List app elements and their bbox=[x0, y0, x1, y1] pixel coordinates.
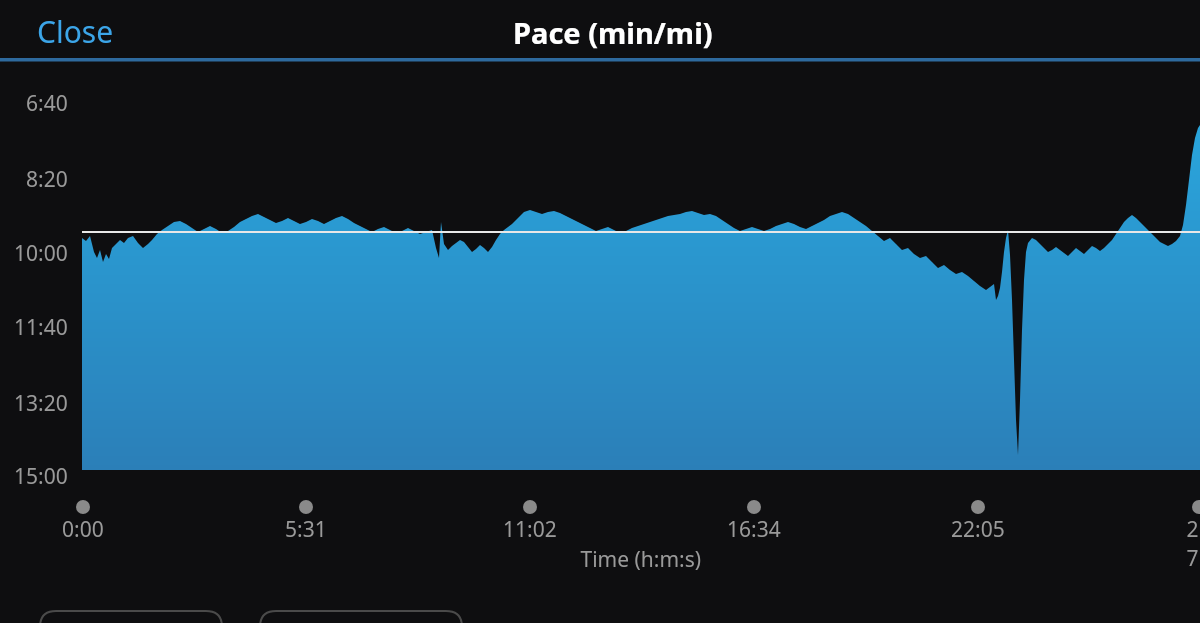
button[interactable]: Chart option 2 bbox=[260, 611, 462, 623]
button[interactable]: Close bbox=[22, 2, 134, 56]
button[interactable]: Chart option 1 bbox=[40, 611, 222, 623]
